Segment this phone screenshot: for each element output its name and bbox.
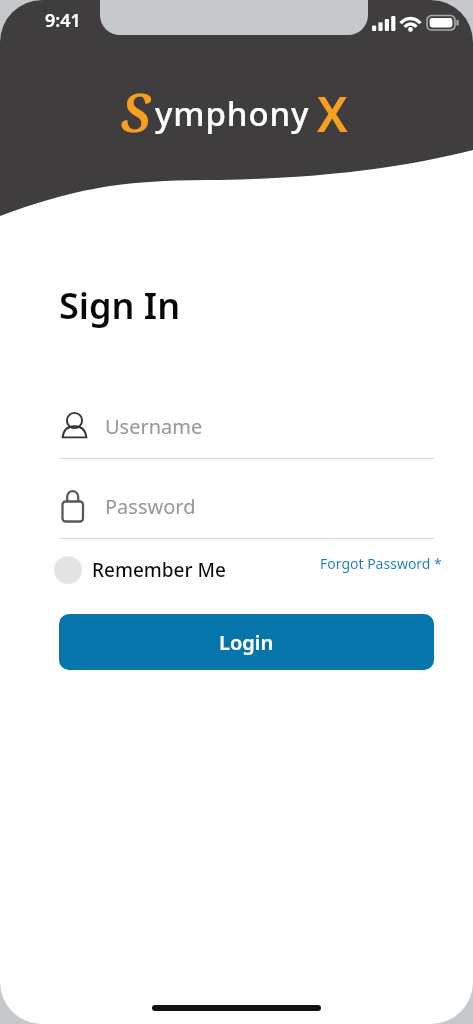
button[interactable]: Login [59, 614, 434, 670]
button[interactable]: Remember Me [54, 556, 226, 584]
staticText: Remember Me [92, 557, 226, 583]
staticText: Password [105, 493, 196, 520]
staticText: Sign In [59, 281, 181, 330]
staticText: X [317, 81, 348, 146]
staticText: Forgot Password * [320, 554, 442, 573]
staticText: Login [219, 629, 274, 656]
button[interactable]: Password [59, 485, 434, 538]
button[interactable]: Forgot Password * [314, 548, 448, 579]
button[interactable]: Username [59, 405, 434, 458]
staticText: ymphony [155, 91, 310, 136]
staticText: S [121, 76, 151, 147]
staticText: 9:41 [45, 8, 81, 33]
staticText: Username [105, 413, 203, 440]
